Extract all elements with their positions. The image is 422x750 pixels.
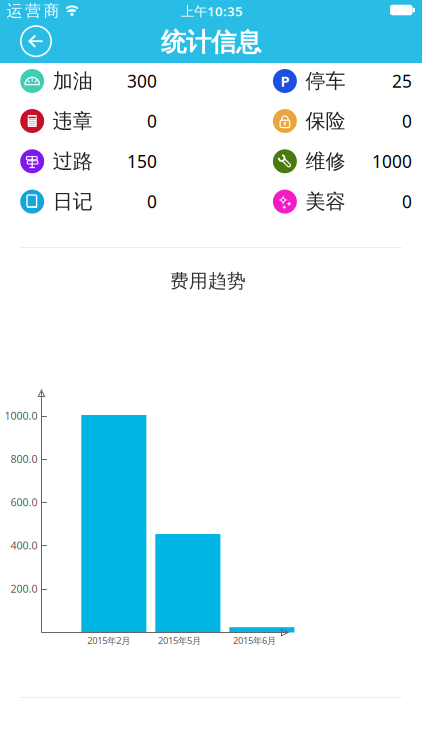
staticText: 400.0 [10,538,37,552]
staticText: 600.0 [10,495,37,509]
staticText: 加油 [53,69,93,93]
staticText: 保险 [305,109,345,133]
staticText: 美容 [305,189,345,214]
staticText: 2015年6月 [233,634,276,647]
button[interactable]: 违章 [0,101,211,141]
staticText: 0 [147,109,157,132]
staticText: 25 [392,69,412,92]
button[interactable]: 美容 [211,181,422,222]
button[interactable]: 维修 [211,141,422,181]
staticText: 日记 [53,189,93,214]
staticText: 2015年2月 [87,634,130,647]
staticText: 200.0 [10,582,37,596]
staticText: 停车 [305,69,345,93]
staticText: 2015年5月 [158,634,201,647]
button[interactable]: 日记 [0,181,211,222]
staticText: 800.0 [10,452,37,466]
staticText: P [280,71,289,91]
staticText: 1000 [372,150,412,173]
staticText: 1000.0 [4,408,37,423]
staticText: 300 [127,69,157,92]
button[interactable]: 过路 [0,141,211,181]
staticText: 上午10:35 [181,2,243,20]
staticText: 维修 [305,149,345,174]
button[interactable]: Back [20,25,52,57]
staticText: 违章 [53,109,93,133]
staticText: 费用趋势 [170,269,246,292]
staticText: 0 [402,190,412,213]
staticText: 统计信息 [161,27,261,58]
staticText: 过路 [53,149,93,174]
staticText: 0 [402,109,412,132]
button[interactable]: 加油 [0,61,211,101]
staticText: 运营商 [6,1,59,21]
staticText: 150 [127,150,157,173]
button[interactable]: 保险 [211,101,422,141]
button[interactable]: P [211,61,422,101]
staticText: 0 [147,190,157,213]
